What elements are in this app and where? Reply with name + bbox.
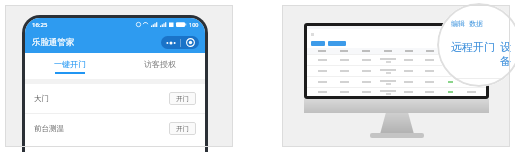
staticText: 乐脸通管家	[32, 37, 75, 48]
button[interactable]: 大门	[34, 84, 196, 113]
staticText: 编辑	[451, 19, 465, 28]
button[interactable]: 访客授权	[115, 53, 205, 79]
staticText: 大门	[34, 94, 49, 103]
staticText: 远程开门	[451, 40, 495, 54]
staticText: 开门	[176, 125, 189, 133]
staticText: 前台测温	[34, 124, 64, 133]
button[interactable]: 开门	[169, 92, 196, 105]
staticText: 开门	[176, 95, 189, 103]
staticText: 设备	[500, 40, 515, 68]
button[interactable]: 开门	[169, 122, 196, 135]
button[interactable]: 一键开门	[25, 53, 115, 79]
button[interactable]: 前台测温	[34, 114, 196, 143]
staticText: 一键开门	[54, 59, 86, 69]
button[interactable]: More options and close	[161, 36, 199, 49]
staticText: 数据	[469, 19, 483, 28]
staticText: 访客授权	[144, 59, 176, 69]
staticText: 16:25	[32, 21, 48, 29]
staticText: 100	[189, 21, 199, 28]
